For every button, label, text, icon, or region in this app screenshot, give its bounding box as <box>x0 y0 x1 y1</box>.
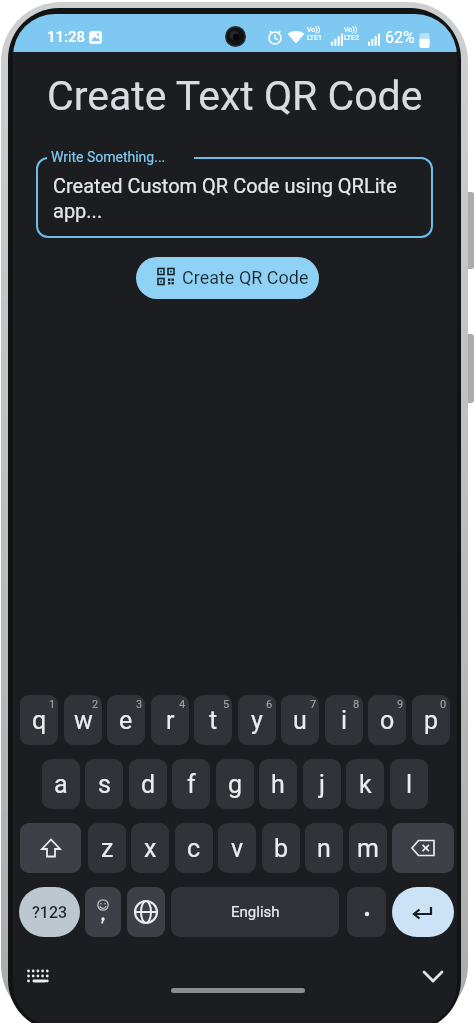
button[interactable]: n <box>305 823 343 873</box>
button[interactable]: v <box>218 823 256 873</box>
staticText: LTE2 <box>344 34 359 42</box>
button[interactable]: a <box>42 759 80 809</box>
staticText: ?123 <box>32 903 68 922</box>
staticText: 4 <box>179 698 186 711</box>
staticText: e <box>119 706 133 735</box>
staticText: 6 <box>266 698 273 711</box>
button[interactable]: g <box>216 759 254 809</box>
staticText: d <box>141 770 156 799</box>
button[interactable]: i <box>325 695 363 745</box>
button[interactable]: p <box>412 695 450 745</box>
button[interactable]: j <box>303 759 341 809</box>
staticText: 7 <box>310 698 317 711</box>
button[interactable]: b <box>262 823 300 873</box>
button[interactable] <box>392 823 454 873</box>
button[interactable]: English <box>171 887 339 937</box>
staticText: 62% <box>385 28 415 47</box>
staticText: j <box>319 770 325 799</box>
staticText: 11:28 <box>47 28 86 46</box>
staticText: Created Custom QR Code using QRLite app.… <box>53 174 397 223</box>
staticText: t <box>209 706 218 735</box>
staticText: LTE1 <box>307 34 322 42</box>
staticText: f <box>187 770 196 799</box>
staticText: Vo)) <box>307 26 321 34</box>
button[interactable]: Create QR Code <box>136 257 319 299</box>
staticText: 0 <box>440 698 447 711</box>
button[interactable]: f <box>172 759 210 809</box>
staticText: v <box>231 834 244 863</box>
staticText: 3 <box>136 698 143 711</box>
button[interactable]: y <box>238 695 276 745</box>
button[interactable]: x <box>131 823 169 873</box>
button[interactable] <box>392 887 454 937</box>
button[interactable] <box>21 964 55 990</box>
staticText: q <box>32 706 47 735</box>
button[interactable]: l <box>390 759 428 809</box>
button[interactable] <box>85 887 121 937</box>
button[interactable]: t <box>194 695 232 745</box>
staticText: l <box>406 770 413 799</box>
staticText: u <box>293 706 307 735</box>
staticText: Write Something... <box>51 149 166 165</box>
staticText: y <box>251 706 263 735</box>
button[interactable]: q <box>20 695 58 745</box>
button[interactable]: h <box>259 759 297 809</box>
button[interactable]: u <box>281 695 319 745</box>
button[interactable]: e <box>107 695 145 745</box>
button[interactable] <box>36 157 433 238</box>
staticText: b <box>274 834 289 863</box>
button[interactable] <box>417 964 449 990</box>
staticText: 2 <box>92 698 99 711</box>
staticText: h <box>271 770 285 799</box>
staticText: 1 <box>49 698 56 711</box>
button[interactable]: w <box>64 695 102 745</box>
button[interactable]: z <box>88 823 126 873</box>
staticText: m <box>357 834 379 863</box>
staticText: English <box>231 903 280 921</box>
button[interactable] <box>20 823 81 873</box>
staticText: n <box>317 834 331 863</box>
staticText: Create QR Code <box>182 267 309 288</box>
button[interactable]: c <box>175 823 213 873</box>
button[interactable]: m <box>349 823 387 873</box>
staticText: o <box>380 706 395 735</box>
staticText: i <box>341 706 348 735</box>
button[interactable] <box>347 887 386 937</box>
staticText: r <box>166 706 175 735</box>
staticText: Create Text QR Code <box>47 72 423 120</box>
button[interactable]: s <box>85 759 123 809</box>
button[interactable]: ?123 <box>19 887 80 937</box>
staticText: 9 <box>397 698 404 711</box>
button[interactable]: k <box>346 759 384 809</box>
staticText: 8 <box>353 698 360 711</box>
staticText: g <box>228 770 243 799</box>
staticText: a <box>54 770 68 799</box>
staticText: c <box>187 834 201 863</box>
button[interactable]: r <box>151 695 189 745</box>
staticText: z <box>101 834 114 863</box>
staticText: k <box>359 770 372 799</box>
button[interactable]: d <box>129 759 167 809</box>
staticText: w <box>74 706 93 735</box>
staticText: Vo)) <box>344 26 358 34</box>
button[interactable] <box>127 887 165 937</box>
staticText: s <box>98 770 111 799</box>
staticText: p <box>424 706 439 735</box>
button[interactable]: o <box>368 695 406 745</box>
staticText: 5 <box>223 698 230 711</box>
staticText: x <box>144 834 157 863</box>
